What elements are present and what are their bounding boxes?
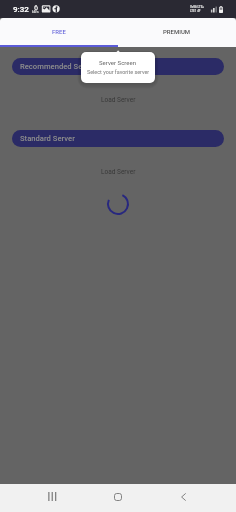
- staticText: kB/s: [32, 10, 39, 14]
- staticText: Server Screen: [99, 59, 137, 66]
- staticText: 9:32: [13, 4, 29, 13]
- button[interactable]: Back: [170, 484, 198, 510]
- button[interactable]: PREMIUM: [118, 18, 236, 45]
- staticText: Select your favorite server: [87, 69, 150, 75]
- staticText: Recommended Server: [20, 62, 96, 71]
- button[interactable]: Server Screen: [81, 52, 155, 83]
- staticText: Standard Server: [20, 134, 75, 143]
- button[interactable]: Standard Server: [12, 130, 224, 147]
- staticText: VoWi LTE+: [190, 5, 204, 8]
- staticText: 6: [34, 3, 39, 11]
- staticText: PREMIUM: [163, 28, 191, 35]
- button[interactable]: Home: [104, 484, 132, 510]
- button[interactable]: FREE: [0, 18, 118, 45]
- button[interactable]: Recommended Server: [12, 58, 224, 75]
- staticText: Load Server: [101, 168, 136, 176]
- button[interactable]: Recents: [38, 484, 66, 509]
- staticText: FREE: [52, 28, 66, 35]
- staticText: LTE1 4F: [190, 9, 201, 12]
- staticText: Load Server: [101, 96, 136, 104]
